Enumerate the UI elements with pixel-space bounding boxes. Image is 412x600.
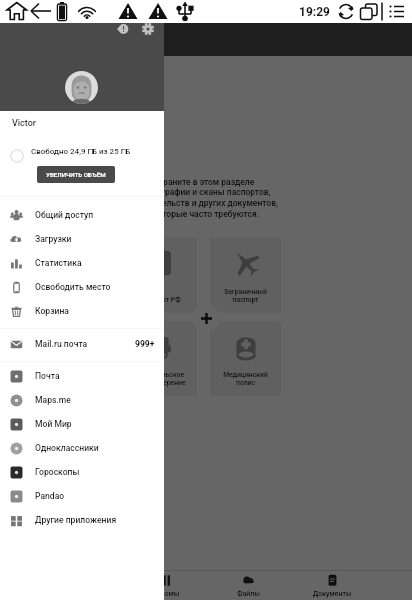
staticText: УВЕЛИЧИТЬ ОБЪЁМ xyxy=(46,171,106,178)
button[interactable]: Заграничный паспорт xyxy=(210,238,281,313)
staticText: Освободить место xyxy=(35,282,111,292)
button[interactable]: Водительское удостоверение xyxy=(126,321,197,396)
button[interactable]: Settings xyxy=(139,20,157,38)
staticText: Корзина xyxy=(35,306,69,316)
button[interactable]: Почта xyxy=(0,364,164,388)
button[interactable]: Альбомы xyxy=(122,571,206,600)
staticText: Victor xyxy=(12,118,36,129)
staticText: Файлы xyxy=(237,590,260,598)
button[interactable]: Мой Мир xyxy=(0,412,164,436)
button[interactable]: Медицинский полис xyxy=(210,321,281,396)
button[interactable]: Корзина xyxy=(0,299,164,323)
staticText: Альбомы xyxy=(148,590,180,598)
staticText: Свободно 24,9 ГБ из 25 ГБ xyxy=(31,147,131,156)
staticText: Общий доступ xyxy=(35,210,94,220)
button[interactable]: Общий доступ xyxy=(0,203,164,227)
button[interactable]: Статистика xyxy=(0,251,164,275)
button[interactable]: Feedback xyxy=(114,20,132,38)
staticText: Загрузки xyxy=(35,234,72,244)
button[interactable]: Документы xyxy=(290,571,374,600)
button[interactable]: Profile photo xyxy=(65,71,98,104)
staticText: Одноклассники xyxy=(35,443,99,453)
staticText: Заграничный паспорт xyxy=(224,288,267,304)
staticText: Maps.me xyxy=(35,395,71,405)
button[interactable]: Mail.ru почта xyxy=(0,332,164,356)
button[interactable]: Загрузки xyxy=(0,227,164,251)
staticText: Другие приложения xyxy=(35,515,117,525)
button[interactable]: Одноклассники xyxy=(0,436,164,460)
button[interactable]: Освободить место xyxy=(0,275,164,299)
button[interactable]: Гороскопы xyxy=(0,460,164,484)
staticText: Гороскопы xyxy=(35,467,80,477)
staticText: Документы xyxy=(313,590,352,598)
button[interactable]: Файлы xyxy=(206,571,290,600)
staticText: Pandao xyxy=(35,491,65,501)
staticText: Водительское удостоверение xyxy=(137,371,186,387)
button[interactable]: Add document xyxy=(192,304,220,332)
staticText: Почта xyxy=(35,371,60,381)
button[interactable]: Паспорт РФ xyxy=(126,238,197,313)
staticText: Паспорт РФ xyxy=(142,296,181,304)
staticText: Мой Мир xyxy=(35,419,72,429)
button[interactable]: Другие приложения xyxy=(0,508,164,532)
staticText: Статистика xyxy=(35,258,82,268)
staticText: Храните в этом разделе фотографии и скан… xyxy=(0,177,412,219)
staticText: Mail.ru почта xyxy=(35,339,88,349)
staticText: Медицинский полис xyxy=(223,371,268,387)
staticText: 999+ xyxy=(135,339,155,349)
staticText: 19:29 xyxy=(299,5,330,19)
button[interactable]: Pandao xyxy=(0,484,164,508)
button[interactable]: Maps.me xyxy=(0,388,164,412)
button[interactable]: УВЕЛИЧИТЬ ОБЪЁМ xyxy=(37,166,115,183)
